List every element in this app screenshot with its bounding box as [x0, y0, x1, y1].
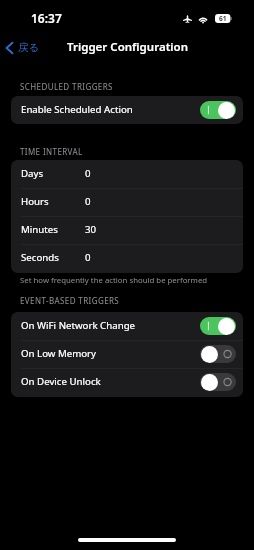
staticText: SCHEDULED TRIGGERS [20, 81, 113, 92]
staticText: Trigger Configuration [67, 39, 188, 55]
other: Toggle off [200, 373, 236, 391]
staticText: Seconds [21, 251, 59, 264]
other: Toggle on [200, 101, 236, 119]
button[interactable]: Back [0, 36, 48, 59]
button[interactable]: Seconds [11, 244, 243, 272]
staticText: On WiFi Network Change [21, 319, 136, 332]
staticText: EVENT-BASED TRIGGERS [20, 295, 120, 306]
staticText: TIME INTERVAL [20, 146, 83, 157]
staticText: On Low Memory [21, 347, 97, 360]
staticText: 0 [85, 195, 91, 208]
staticText: 戻る [18, 41, 40, 54]
staticText: Days [21, 167, 44, 180]
staticText: 0 [85, 167, 91, 180]
staticText: 16:37 [31, 10, 62, 26]
button[interactable]: Hours [11, 188, 243, 216]
staticText: Enable Scheduled Action [21, 103, 133, 116]
staticText: 0 [85, 251, 91, 264]
button[interactable]: On Low Memory [11, 340, 243, 368]
staticText: On Device Unlock [21, 375, 101, 388]
staticText: Set how frequently the action should be … [20, 275, 208, 286]
staticText: Hours [21, 195, 49, 208]
button[interactable]: On WiFi Network Change [11, 312, 243, 340]
other: Toggle off [200, 345, 236, 363]
button[interactable]: On Device Unlock [11, 368, 243, 396]
button[interactable]: Enable Scheduled Action [11, 96, 243, 124]
button[interactable]: Minutes [11, 216, 243, 244]
other: Toggle on [200, 317, 236, 335]
staticText: Minutes [21, 223, 58, 236]
staticText: 61 [219, 14, 227, 23]
button[interactable]: Days [11, 160, 243, 188]
staticText: 30 [85, 223, 97, 236]
